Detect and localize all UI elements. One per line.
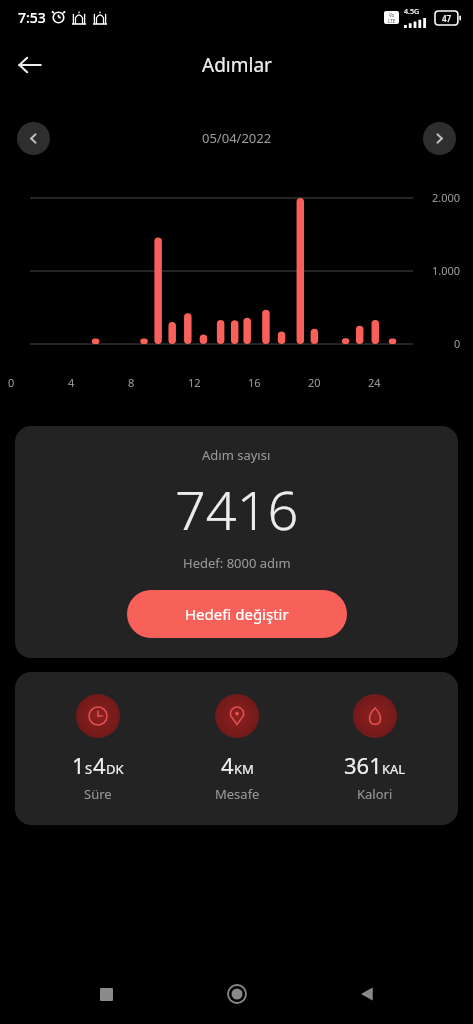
button[interactable]: Back: [6, 41, 54, 89]
staticText: 4: [93, 750, 106, 780]
button[interactable]: Home: [213, 970, 261, 1018]
button[interactable]: Back: [343, 970, 391, 1018]
button[interactable]: Recents: [82, 970, 130, 1018]
staticText: Adım sayısı: [202, 446, 271, 464]
button[interactable]: 1: [43, 694, 153, 803]
staticText: S: [85, 760, 93, 778]
staticText: 4: [221, 750, 234, 780]
button[interactable]: Previous day: [17, 122, 50, 155]
staticText: KM: [234, 760, 254, 778]
button[interactable]: 4: [182, 694, 292, 803]
staticText: 16: [248, 375, 261, 390]
button[interactable]: Next day: [423, 122, 456, 155]
staticText: 8: [128, 375, 135, 390]
staticText: 0: [454, 336, 461, 351]
staticText: 05/04/2022: [202, 129, 272, 147]
staticText: 1: [72, 750, 85, 780]
staticText: 2.000: [432, 190, 461, 205]
staticText: 12: [188, 375, 201, 390]
staticText: DK: [106, 760, 124, 778]
staticText: Kalori: [357, 785, 393, 803]
staticText: 20: [308, 375, 321, 390]
button[interactable]: Hedefi değiştir: [127, 590, 347, 638]
staticText: 24: [368, 375, 381, 390]
staticText: Vo: [389, 12, 395, 18]
staticText: 1.000: [432, 263, 461, 278]
staticText: Hedef: 8000 adım: [183, 554, 291, 572]
staticText: 361: [344, 750, 382, 780]
staticText: Adımlar: [202, 52, 272, 78]
staticText: 0: [8, 375, 15, 390]
staticText: 7416: [175, 472, 299, 546]
staticText: KAL: [382, 760, 406, 778]
staticText: LTE: [388, 18, 396, 24]
button[interactable]: 361: [320, 694, 430, 803]
staticText: 4.5G: [404, 7, 419, 17]
staticText: 4: [68, 375, 75, 390]
staticText: Süre: [84, 785, 112, 803]
staticText: Hedefi değiştir: [185, 604, 289, 624]
staticText: 47: [442, 13, 452, 24]
staticText: 7:53: [18, 8, 46, 27]
staticText: Mesafe: [215, 785, 260, 803]
